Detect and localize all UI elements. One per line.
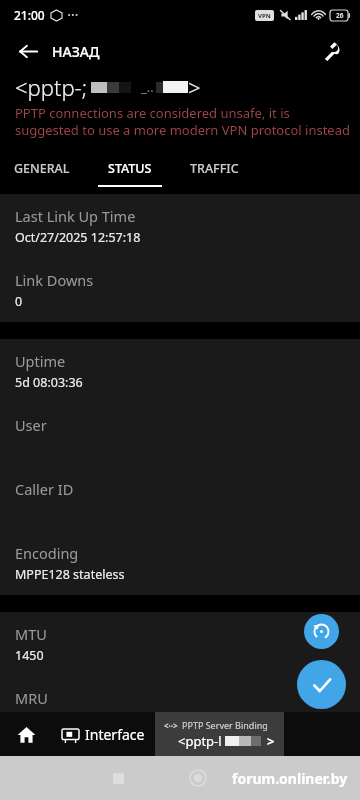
button[interactable]: MRU	[0, 676, 360, 712]
staticText: PPTP connections are considered unsafe, …	[15, 104, 350, 139]
staticText: <··>	[164, 720, 178, 731]
staticText: Link Downs	[15, 270, 94, 290]
button[interactable]: GENERAL	[0, 149, 84, 191]
button[interactable]: Home	[0, 712, 52, 756]
staticText: 21:00	[14, 7, 45, 23]
staticText: Last Link Up Time	[15, 206, 136, 226]
button[interactable]: Link Downs	[0, 258, 360, 322]
button[interactable]: Recents	[101, 761, 135, 795]
button[interactable]: User	[0, 403, 360, 467]
staticText: _..	[141, 78, 154, 96]
staticText: 26	[336, 11, 344, 20]
button[interactable]: Apply	[297, 660, 346, 709]
button[interactable]: MTU	[0, 612, 360, 676]
staticText: Caller ID	[15, 479, 74, 499]
staticText: GENERAL	[14, 160, 70, 177]
staticText: >	[188, 72, 201, 102]
button[interactable]: Home	[181, 761, 215, 795]
button[interactable]: Uptime	[0, 339, 360, 403]
button[interactable]: Encoding	[0, 531, 360, 595]
button[interactable]: Settings	[312, 31, 352, 71]
staticText: VPN	[258, 12, 271, 20]
staticText: User	[15, 415, 47, 435]
button[interactable]: Revert	[304, 614, 339, 649]
staticText: MTU	[15, 624, 47, 644]
button[interactable]: <··>	[155, 712, 284, 756]
staticText: forum.onliner.by	[232, 769, 348, 788]
staticText: 1450	[15, 647, 44, 664]
button[interactable]: Caller ID	[0, 467, 360, 531]
staticText: Uptime	[15, 351, 66, 371]
staticText: Oct/27/2025 12:57:18	[15, 229, 141, 246]
button[interactable]: Interface	[52, 712, 155, 756]
other: Back	[8, 31, 48, 71]
staticText: MPPE128 stateless	[15, 566, 125, 583]
staticText: НАЗАД	[52, 42, 100, 61]
staticText: Interface	[85, 725, 145, 744]
staticText: 0	[15, 293, 23, 310]
button[interactable]: Back	[8, 31, 100, 71]
staticText: 5d 08:03:36	[15, 374, 83, 391]
staticText: <pptp-;	[15, 72, 88, 102]
staticText: >	[267, 732, 275, 750]
staticText: PPTP Server Binding	[182, 719, 268, 731]
button[interactable]: STATUS	[84, 149, 176, 191]
staticText: TRAFFIC	[190, 160, 239, 177]
button[interactable]: TRAFFIC	[176, 149, 253, 191]
button[interactable]: Last Link Up Time	[0, 194, 360, 258]
staticText: MRU	[15, 688, 48, 708]
staticText: STATUS	[108, 160, 152, 177]
staticText: <pptp-l	[178, 732, 222, 750]
staticText: Encoding	[15, 543, 79, 563]
